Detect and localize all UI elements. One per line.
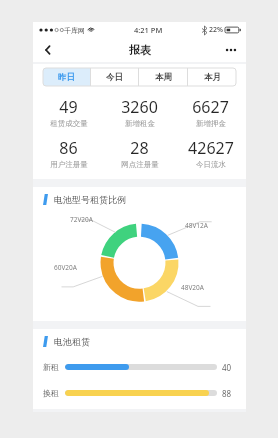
button[interactable]: 本月 [188,68,236,86]
staticText: 电池型号租赁比例 [54,194,126,205]
staticText: 48V20A [181,283,204,292]
staticText: 千库网 [64,26,85,35]
staticText: 42627 [188,137,234,159]
staticText: 今日 [106,72,123,83]
staticText: 22% [209,25,223,35]
button[interactable]: 49 [33,96,104,128]
button[interactable]: Back [37,39,59,61]
staticText: 4:21 PM [134,25,163,35]
staticText: 6627 [192,96,229,118]
staticText: 49 [59,96,78,118]
button[interactable]: 昨日 [43,68,90,86]
button[interactable]: 新租 [43,361,238,373]
staticText: 48V12A [185,221,208,230]
staticText: 新增租金 [125,119,155,128]
staticText: 72V20A [70,215,93,224]
button[interactable]: 换租 [43,387,238,399]
button[interactable]: 本周 [139,68,187,86]
staticText: 今日流水 [196,160,226,169]
staticText: 86 [59,137,78,159]
staticText: 换租 [43,388,59,398]
staticText: 3260 [121,96,158,118]
staticText: 用户注册量 [50,160,88,169]
button[interactable]: 28 [104,137,175,169]
staticText: 本周 [155,72,172,83]
staticText: 40 [222,362,232,373]
staticText: 88 [222,388,232,399]
staticText: 昨日 [58,72,75,83]
button[interactable]: 6627 [175,96,246,128]
button[interactable]: More options [220,39,242,61]
button[interactable]: 3260 [104,96,175,128]
staticText: 电池租赁 [54,336,90,347]
staticText: 租赁成交量 [50,119,88,128]
button[interactable]: 86 [33,137,104,169]
button[interactable]: 今日 [91,68,138,86]
staticText: 28 [130,137,149,159]
button[interactable]: 42627 [175,137,246,169]
staticText: 新租 [43,362,59,372]
staticText: 新增押金 [196,119,226,128]
staticText: 60V20A [54,263,77,272]
staticText: 报表 [129,43,151,57]
staticText: 网点注册量 [121,160,159,169]
staticText: 本月 [204,72,221,83]
